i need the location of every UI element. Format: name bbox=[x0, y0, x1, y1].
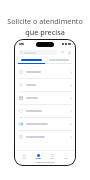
staticText: que precisa bbox=[25, 27, 65, 37]
button[interactable] bbox=[15, 131, 75, 143]
button[interactable] bbox=[15, 105, 75, 117]
button[interactable]: Carteirinha bbox=[45, 151, 59, 161]
button[interactable]: Início bbox=[17, 151, 31, 161]
button[interactable] bbox=[15, 92, 75, 104]
button[interactable]: Perfil bbox=[67, 50, 72, 55]
button[interactable] bbox=[18, 56, 45, 63]
button[interactable] bbox=[15, 66, 75, 78]
button[interactable] bbox=[15, 118, 75, 130]
button[interactable] bbox=[15, 79, 75, 91]
button[interactable]: Atendimento bbox=[31, 151, 45, 161]
button[interactable] bbox=[18, 50, 57, 55]
button[interactable] bbox=[45, 56, 72, 63]
button[interactable]: Mais bbox=[59, 151, 73, 161]
button[interactable]: Filtros bbox=[60, 50, 65, 55]
staticText: Solicite o atendimento bbox=[7, 16, 83, 26]
